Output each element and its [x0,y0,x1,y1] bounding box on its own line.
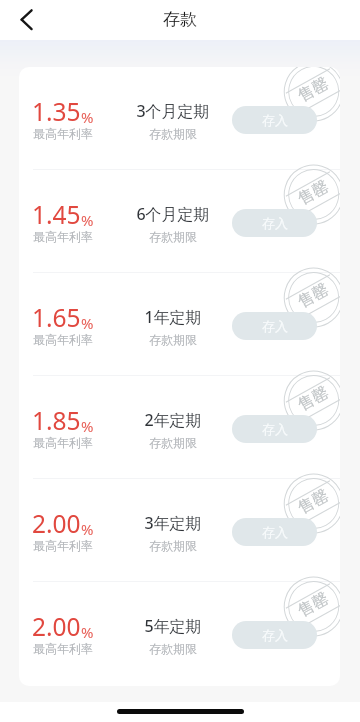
staticText: 存入 [262,627,288,643]
staticText: 存款期限 [149,641,197,656]
staticText: 存入 [262,524,288,540]
button[interactable]: 存入 [232,415,317,443]
button[interactable]: 存入 [232,312,317,340]
staticText: 存入 [262,318,288,334]
staticText: 存款 [163,9,197,30]
staticText: % [81,210,94,230]
staticText: 最高年利率 [33,126,93,141]
staticText: 2.00 [32,610,81,643]
button[interactable]: 存入 [232,518,317,546]
staticText: 3年定期 [144,512,202,534]
staticText: % [81,519,94,539]
staticText: 最高年利率 [33,641,93,656]
staticText: 1.65 [32,301,81,334]
staticText: 存款期限 [149,538,197,553]
staticText: % [81,313,94,333]
staticText: 1.45 [32,198,81,231]
button[interactable]: 1.45 [19,170,340,273]
staticText: 2年定期 [144,409,202,431]
staticText: 1.35 [32,95,81,128]
staticText: 6个月定期 [136,203,210,225]
staticText: 最高年利率 [33,229,93,244]
staticText: 1.85 [32,404,81,437]
staticText: 存入 [262,421,288,437]
staticText: 存款期限 [149,332,197,347]
button[interactable]: 存入 [232,209,317,237]
button[interactable]: 2.00 [19,479,340,582]
staticText: 5年定期 [144,615,202,637]
staticText: 存入 [262,112,288,128]
staticText: 最高年利率 [33,332,93,347]
button[interactable]: Back [10,4,42,36]
button[interactable]: 1.85 [19,376,340,479]
staticText: % [81,622,94,642]
staticText: 2.00 [32,507,81,540]
staticText: 存款期限 [149,435,197,450]
staticText: 最高年利率 [33,435,93,450]
staticText: 1年定期 [144,306,202,328]
button[interactable]: 2.00 [19,582,340,685]
button[interactable]: 存入 [232,621,317,649]
button[interactable]: 1.35 [19,67,340,170]
staticText: 存入 [262,215,288,231]
staticText: 存款期限 [149,126,197,141]
button[interactable]: 1.65 [19,273,340,376]
button[interactable]: 存入 [232,106,317,134]
staticText: 3个月定期 [136,100,210,122]
staticText: 存款期限 [149,229,197,244]
staticText: 最高年利率 [33,538,93,553]
staticText: % [81,416,94,436]
staticText: % [81,107,94,127]
